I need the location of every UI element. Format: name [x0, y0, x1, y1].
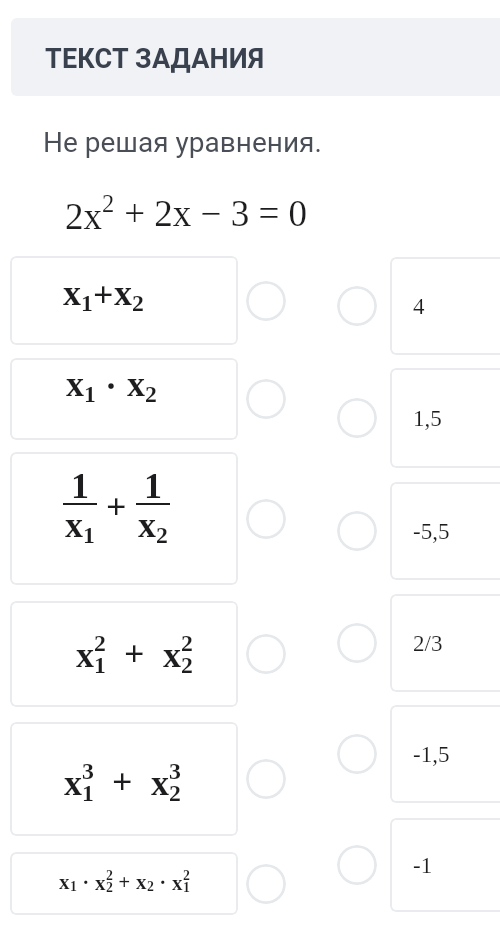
- staticText: ·: [154, 870, 172, 893]
- staticText: x: [63, 273, 81, 313]
- staticText: ·: [77, 870, 95, 893]
- button[interactable]: Select formula: [246, 499, 286, 539]
- staticText: 2: [181, 652, 193, 678]
- staticText: 1,5: [413, 406, 442, 431]
- staticText: 2/3: [413, 631, 443, 656]
- button[interactable]: x: [10, 256, 238, 345]
- staticText: 1: [183, 880, 190, 895]
- staticText: 2: [132, 290, 144, 316]
- staticText: +: [94, 762, 151, 802]
- staticText: +: [106, 634, 163, 674]
- staticText: 2: [145, 381, 157, 407]
- button[interactable]: Select answer: [337, 398, 377, 438]
- button[interactable]: -5,5: [390, 482, 500, 580]
- button[interactable]: ТЕКСТ ЗАДАНИЯ: [11, 18, 500, 96]
- staticText: ТЕКСТ ЗАДАНИЯ: [45, 43, 265, 75]
- staticText: x: [65, 505, 83, 545]
- staticText: 1: [82, 780, 94, 806]
- button[interactable]: -1: [390, 818, 500, 912]
- button[interactable]: Select answer: [337, 511, 377, 551]
- staticText: + 2x − 3 = 0: [115, 193, 308, 234]
- button[interactable]: Select formula: [246, 864, 286, 904]
- staticText: x: [59, 870, 70, 893]
- staticText: +: [113, 870, 136, 893]
- staticText: Не решая уравнения.: [43, 126, 322, 159]
- staticText: x: [163, 635, 181, 675]
- button[interactable]: x: [10, 852, 238, 915]
- staticText: 2: [102, 190, 115, 217]
- button[interactable]: Select formula: [246, 379, 286, 419]
- staticText: 3: [169, 758, 181, 784]
- button[interactable]: 2/3: [390, 594, 500, 692]
- staticText: 2x: [65, 196, 102, 237]
- staticText: x: [138, 505, 156, 545]
- staticText: x: [95, 871, 106, 894]
- staticText: x: [172, 871, 183, 894]
- staticText: +: [97, 487, 136, 527]
- staticText: 2: [106, 868, 113, 883]
- staticText: 1: [70, 879, 77, 894]
- staticText: 2: [169, 780, 181, 806]
- button[interactable]: Select formula: [246, 281, 286, 321]
- staticText: 2: [183, 868, 190, 883]
- button[interactable]: Select formula: [246, 759, 286, 799]
- button[interactable]: x: [10, 358, 238, 440]
- button[interactable]: Select answer: [337, 845, 377, 885]
- button[interactable]: 1: [10, 452, 238, 585]
- staticText: -5,5: [413, 519, 450, 544]
- staticText: 2: [94, 630, 106, 656]
- button[interactable]: Select answer: [337, 734, 377, 774]
- staticText: x: [127, 364, 145, 404]
- staticText: 1: [81, 290, 93, 316]
- button[interactable]: x: [10, 722, 238, 836]
- staticText: +: [93, 275, 114, 315]
- button[interactable]: x: [10, 601, 238, 707]
- staticText: 1: [84, 381, 96, 407]
- staticText: 4: [413, 294, 425, 319]
- staticText: x: [66, 364, 84, 404]
- staticText: 1: [94, 652, 106, 678]
- staticText: 2: [181, 630, 193, 656]
- staticText: x: [76, 635, 94, 675]
- button[interactable]: 1,5: [390, 368, 500, 468]
- button[interactable]: 4: [390, 257, 500, 355]
- staticText: 2: [156, 522, 168, 548]
- staticText: x: [114, 273, 132, 313]
- staticText: 3: [82, 758, 94, 784]
- staticText: x: [151, 763, 169, 803]
- staticText: 2: [147, 879, 154, 894]
- button[interactable]: -1,5: [390, 705, 500, 803]
- staticText: x: [64, 763, 82, 803]
- staticText: 1: [144, 466, 162, 506]
- button[interactable]: Select formula: [246, 634, 286, 674]
- staticText: -1,5: [413, 742, 450, 767]
- button[interactable]: Select answer: [337, 623, 377, 663]
- button[interactable]: Select answer: [337, 286, 377, 326]
- staticText: -1: [413, 853, 433, 878]
- staticText: x: [136, 870, 147, 893]
- staticText: 1: [71, 466, 89, 506]
- staticText: 1: [83, 522, 95, 548]
- staticText: 2: [106, 880, 113, 895]
- staticText: ·: [96, 366, 127, 406]
